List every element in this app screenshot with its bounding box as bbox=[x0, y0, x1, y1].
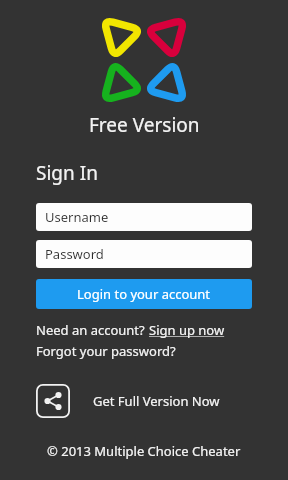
button[interactable]: Sign up now bbox=[149, 321, 225, 339]
staticText: Password bbox=[45, 245, 104, 263]
button[interactable]: Login to your account bbox=[36, 279, 252, 309]
button[interactable]: Share bbox=[36, 384, 70, 418]
staticText: Username bbox=[45, 208, 109, 226]
staticText: Free Version bbox=[89, 112, 200, 138]
staticText: Sign In bbox=[36, 160, 98, 186]
staticText: Login to your account bbox=[77, 285, 211, 303]
button[interactable]: Forgot your password? bbox=[36, 342, 176, 360]
staticText: Get Full Version Now bbox=[93, 392, 220, 410]
staticText: Need an account? bbox=[36, 321, 149, 339]
staticText: Forgot your password? bbox=[36, 342, 176, 360]
button[interactable]: Username bbox=[36, 203, 252, 231]
staticText: © 2013 Multiple Choice Cheater bbox=[47, 442, 241, 460]
button[interactable]: Password bbox=[36, 240, 252, 268]
button[interactable]: Get Full Version Now bbox=[93, 392, 220, 410]
staticText: Sign up now bbox=[149, 321, 225, 339]
